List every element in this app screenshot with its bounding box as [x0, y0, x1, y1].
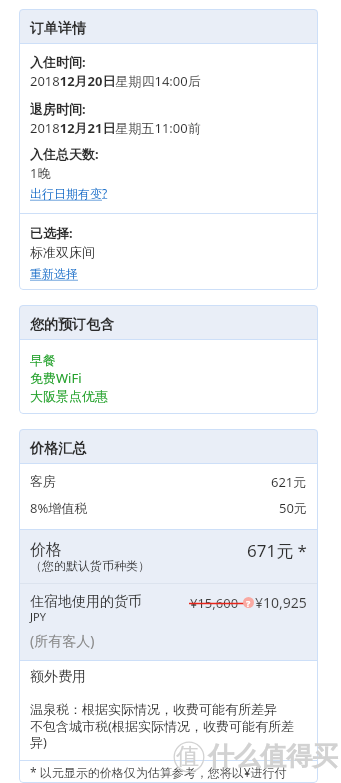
staticText: 大阪景点优惠 — [30, 388, 108, 404]
staticText: 1晚 — [30, 164, 51, 182]
staticText: * 以元显示的价格仅为估算参考，您将以¥进行付 — [30, 764, 287, 780]
button[interactable]: 重新选择 — [30, 266, 78, 281]
staticText: 什么值得买 — [208, 740, 338, 773]
staticText: 50元 — [279, 499, 307, 517]
staticText: 退房时间: — [30, 100, 86, 118]
staticText: (所有客人) — [30, 631, 95, 650]
staticText: 671元 * — [247, 539, 307, 562]
staticText: 价格 — [30, 540, 62, 560]
staticText: 8%增值税 — [30, 499, 88, 517]
staticText: 您的预订包含 — [30, 316, 114, 334]
staticText: 价格汇总 — [30, 440, 86, 458]
staticText: （您的默认货币种类） — [30, 558, 150, 573]
staticText: 入住时间: — [30, 53, 86, 71]
staticText: ¥10,925 — [255, 593, 307, 612]
staticText: 入住总天数: — [30, 145, 99, 163]
staticText: 异) — [30, 733, 47, 749]
staticText: JPY — [30, 609, 46, 624]
staticText: 201812月21日星期五11:00前 — [30, 119, 201, 137]
staticText: 住宿地使用的货币 — [30, 593, 142, 611]
staticText: 已选择: — [30, 224, 73, 242]
staticText: 免费WiFi — [30, 369, 82, 386]
staticText: 标准双床间 — [30, 244, 95, 260]
staticText: 早餐 — [30, 352, 56, 368]
staticText: 不包含城市税(根据实际情况，收费可能有所差 — [30, 717, 294, 733]
staticText: 201812月20日星期四14:00后 — [30, 72, 201, 90]
button[interactable]: 帮助 — [243, 597, 254, 608]
button[interactable]: 出行日期有变? — [30, 185, 108, 201]
staticText: 621元 — [271, 473, 307, 491]
staticText: 额外费用 — [30, 668, 86, 686]
staticText: 订单详情 — [30, 20, 86, 38]
staticText: 值 — [176, 742, 199, 771]
staticText: 客房 — [30, 473, 56, 489]
staticText: ¥15,600 — [190, 594, 239, 612]
staticText: 温泉税：根据实际情况，收费可能有所差异 — [30, 701, 277, 717]
staticText: ? — [246, 597, 251, 608]
